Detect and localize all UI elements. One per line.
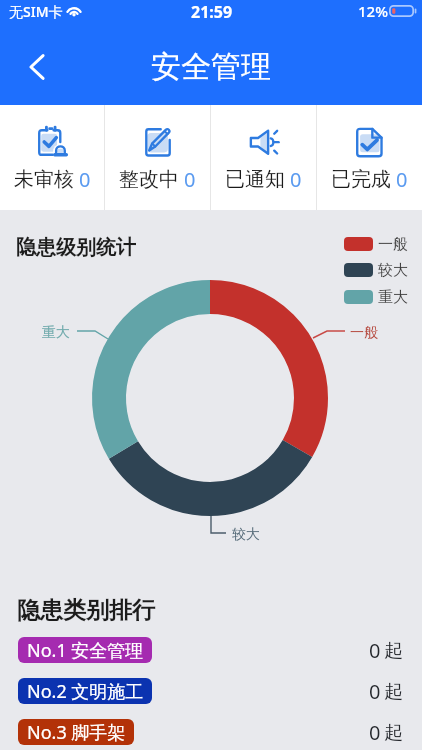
staticText: 0 — [369, 678, 381, 705]
staticText: 0 — [290, 166, 302, 193]
staticText: 较大 — [378, 261, 408, 280]
button[interactable]: 整改中 — [105, 105, 210, 210]
staticText: 重大 — [42, 324, 70, 342]
staticText: 隐患级别统计 — [16, 235, 136, 260]
staticText: 0 — [79, 166, 91, 193]
staticText: 0 — [396, 166, 408, 193]
button[interactable]: 已通知 — [211, 105, 316, 210]
staticText: 无SIM卡 — [9, 2, 63, 21]
staticText: 已通知 — [225, 167, 285, 192]
staticText: 一般 — [378, 235, 408, 254]
staticText: 隐患类别排行 — [17, 596, 155, 625]
staticText: 0 — [369, 637, 381, 664]
staticText: 起 — [384, 680, 403, 704]
staticText: No.1 安全管理 — [27, 638, 144, 663]
button[interactable]: No.1 安全管理 — [0, 633, 422, 667]
staticText: 一般 — [350, 324, 378, 342]
button[interactable]: 已完成 — [317, 105, 422, 210]
staticText: 12% — [358, 1, 388, 21]
button[interactable]: No.3 脚手架 — [0, 715, 422, 749]
staticText: 起 — [384, 721, 403, 745]
staticText: No.2 文明施工 — [27, 679, 144, 704]
button[interactable]: 未审核 — [0, 105, 104, 210]
staticText: 整改中 — [119, 167, 179, 192]
staticText: 未审核 — [14, 167, 74, 192]
staticText: 21:59 — [191, 1, 233, 23]
button[interactable]: Back — [14, 44, 60, 90]
staticText: 已完成 — [331, 167, 391, 192]
button[interactable]: No.2 文明施工 — [0, 674, 422, 708]
staticText: 起 — [384, 639, 403, 663]
staticText: 0 — [184, 166, 196, 193]
staticText: 安全管理 — [151, 48, 271, 86]
staticText: 0 — [369, 719, 381, 746]
staticText: 较大 — [232, 526, 260, 544]
staticText: 重大 — [378, 288, 408, 307]
staticText: No.3 脚手架 — [27, 720, 126, 745]
